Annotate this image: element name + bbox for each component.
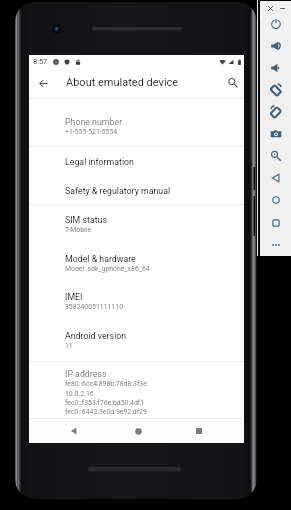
staticText: About emulated device [66,76,179,89]
staticText: Model: sdk_gphone_x86_64 [65,265,150,273]
staticText: Safety & regulatory manual [65,186,171,196]
button[interactable]: Home [128,419,148,443]
button[interactable]: Rotate left [267,81,285,99]
staticText: 358240051111110 [65,303,124,311]
button[interactable]: Safety & regulatory manual [29,186,244,214]
button[interactable]: Android version [29,331,244,359]
staticText: Legal information [65,157,134,167]
staticText: 10.0.2.16 [65,390,94,398]
staticText: Model & hardware [65,254,136,264]
button[interactable]: IP address [29,369,244,425]
staticText: +1-555-521-5554 [65,128,118,136]
button[interactable]: Minimize [277,3,287,13]
staticText: fec0::f353:f76e:bd50:4df1 [65,399,145,407]
button[interactable]: Overview [267,214,285,232]
staticText: fec0::6442:3e0d:9e92:df29 [65,408,147,416]
button[interactable]: IMEI [29,292,244,320]
button[interactable]: Power [267,15,285,33]
staticText: SIM status [65,215,107,225]
button[interactable]: More [267,236,285,254]
staticText: IMEI [65,292,83,302]
staticText: 11 [65,342,73,350]
button[interactable]: Rotate right [267,103,285,121]
button[interactable]: Zoom [267,147,285,165]
button[interactable]: Home [267,191,285,209]
button[interactable]: Back [267,169,285,187]
staticText: Android version [65,331,127,341]
staticText: fe80::6cc4:898b:78d8:3f3e [65,380,147,388]
staticText: Phone number [65,117,123,127]
button[interactable]: Take screenshot [267,125,285,143]
button[interactable]: Search [222,72,244,94]
button[interactable]: Legal information [29,157,244,185]
button[interactable]: Volume down [267,59,285,77]
button[interactable]: Volume up [267,37,285,55]
button[interactable]: Phone number [29,117,244,145]
button[interactable]: Close [265,3,275,13]
button[interactable]: Recent apps [189,419,209,443]
button[interactable]: SIM status [29,215,244,243]
staticText: 8:57 [33,57,48,66]
staticText: IP address [65,369,107,379]
button[interactable]: Model & hardware [29,254,244,282]
button[interactable]: Back [64,419,84,443]
staticText: T-Mobile [65,226,92,234]
button[interactable]: Navigate up [32,72,54,94]
